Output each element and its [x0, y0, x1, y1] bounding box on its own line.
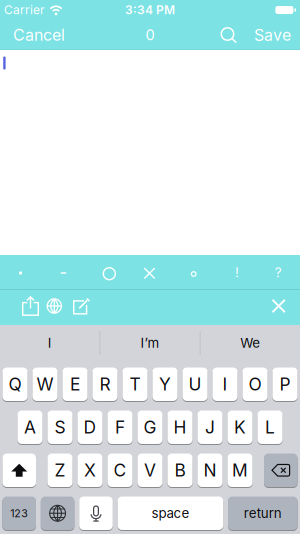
button[interactable] [37, 288, 71, 323]
staticText: 0 [145, 26, 154, 44]
button[interactable] [128, 256, 170, 290]
staticText: B [174, 460, 185, 480]
button[interactable]: Cancel [0, 26, 65, 44]
button[interactable]: return [228, 496, 298, 530]
button[interactable]: K [227, 410, 253, 444]
staticText: ! [235, 264, 239, 280]
button[interactable]: H [167, 410, 193, 444]
staticText: R [99, 374, 110, 394]
button[interactable]: T [122, 367, 148, 401]
button[interactable]: ! [216, 255, 258, 289]
button[interactable]: ? [257, 255, 299, 289]
staticText: K [234, 417, 246, 437]
button[interactable] [0, 256, 41, 290]
button[interactable]: L [257, 410, 283, 444]
staticText: Save [254, 26, 291, 44]
button[interactable]: U [182, 367, 208, 401]
button[interactable] [79, 496, 113, 530]
staticText: N [203, 460, 216, 480]
staticText: G [143, 417, 156, 437]
button[interactable] [41, 496, 74, 530]
button[interactable]: S [47, 410, 73, 444]
staticText: Carrier [4, 3, 45, 17]
staticText: S [54, 417, 65, 437]
button[interactable]: Z [47, 453, 73, 487]
button[interactable]: V [137, 453, 163, 487]
button[interactable] [262, 288, 296, 323]
staticText: 3:34 PM [125, 3, 175, 17]
button[interactable]: A [17, 410, 43, 444]
button[interactable]: N [197, 453, 223, 487]
staticText: I [222, 374, 227, 394]
button[interactable]: J [197, 410, 223, 444]
staticText: Q [8, 374, 21, 394]
button[interactable]: I’m [100, 325, 200, 361]
staticText: 123 [10, 507, 28, 520]
staticText: H [173, 417, 186, 437]
staticText: A [24, 417, 36, 437]
button[interactable]: 123 [2, 496, 36, 530]
button[interactable]: X [77, 453, 103, 487]
button[interactable]: P [272, 367, 298, 401]
button[interactable] [173, 257, 215, 291]
button[interactable]: M [227, 453, 253, 487]
staticText: P [279, 374, 290, 394]
staticText: Y [159, 374, 171, 394]
button[interactable] [220, 26, 254, 43]
button[interactable]: C [107, 453, 133, 487]
button[interactable] [264, 453, 298, 487]
staticText: Cancel [13, 26, 65, 44]
staticText: V [144, 460, 156, 480]
button[interactable]: Y [152, 367, 178, 401]
button[interactable]: B [167, 453, 193, 487]
button[interactable] [2, 453, 36, 487]
button[interactable]: F [107, 410, 133, 444]
button[interactable]: R [92, 367, 118, 401]
button[interactable] [65, 288, 99, 323]
button[interactable]: space [118, 496, 223, 530]
button[interactable]: Q [2, 367, 28, 401]
button[interactable]: D [77, 410, 103, 444]
button[interactable]: W [32, 367, 58, 401]
staticText: X [84, 460, 96, 480]
button[interactable]: I [0, 325, 100, 361]
staticText: O [248, 374, 261, 394]
staticText: We [240, 335, 260, 351]
staticText: T [129, 374, 140, 394]
button[interactable]: We [200, 325, 300, 361]
staticText: Z [54, 460, 65, 480]
staticText: W [36, 374, 53, 394]
button[interactable] [88, 257, 130, 291]
staticText: F [115, 417, 125, 437]
staticText: E [70, 374, 80, 394]
staticText: J [205, 417, 215, 437]
staticText: I’m [140, 335, 159, 351]
button[interactable]: O [242, 367, 268, 401]
staticText: ? [275, 264, 282, 280]
button[interactable]: Save [254, 26, 300, 44]
button[interactable]: E [62, 367, 88, 401]
button[interactable] [13, 288, 47, 323]
staticText: return [244, 505, 282, 521]
button[interactable]: I [212, 367, 238, 401]
staticText: L [265, 417, 275, 437]
staticText: D [83, 417, 96, 437]
staticText: M [232, 460, 248, 480]
staticText: space [151, 505, 189, 521]
staticText: U [188, 374, 201, 394]
button[interactable]: G [137, 410, 163, 444]
button[interactable] [42, 256, 84, 290]
staticText: C [113, 460, 126, 480]
staticText: I [48, 335, 52, 351]
